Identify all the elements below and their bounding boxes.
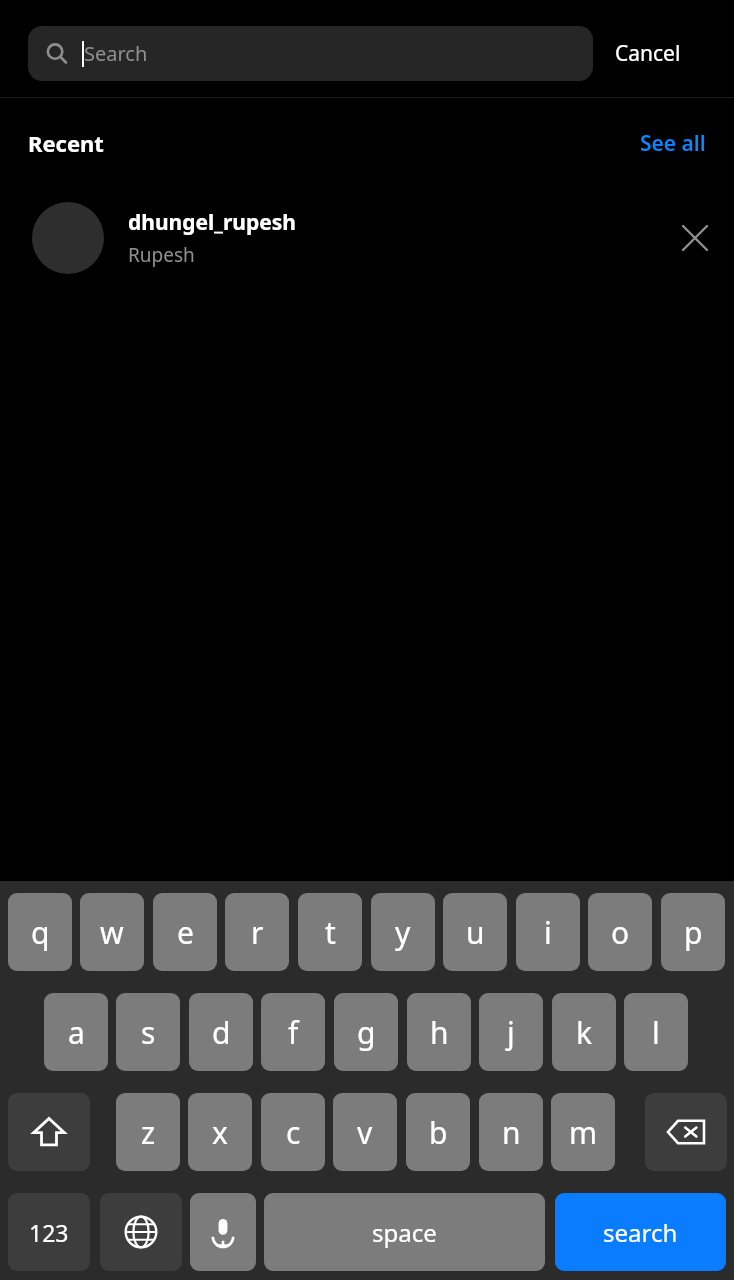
button[interactable]: f bbox=[261, 993, 325, 1071]
button[interactable]: Backspace bbox=[645, 1093, 727, 1171]
button[interactable]: y bbox=[371, 893, 435, 971]
staticText: i bbox=[544, 912, 552, 953]
staticText: q bbox=[31, 912, 50, 953]
button[interactable]: v bbox=[333, 1093, 397, 1171]
button[interactable]: a bbox=[44, 993, 108, 1071]
staticText: Rupesh bbox=[128, 242, 195, 268]
staticText: c bbox=[286, 1112, 301, 1153]
staticText: z bbox=[141, 1112, 156, 1153]
staticText: search bbox=[603, 1216, 678, 1249]
staticText: r bbox=[251, 912, 264, 953]
button[interactable]: dhungel_rupesh bbox=[0, 190, 734, 286]
button[interactable]: Numbers bbox=[8, 1193, 90, 1271]
staticText: u bbox=[466, 912, 485, 953]
staticText: Search bbox=[84, 40, 148, 67]
button[interactable]: g bbox=[334, 993, 398, 1071]
button[interactable]: i bbox=[516, 893, 580, 971]
staticText: b bbox=[429, 1112, 448, 1153]
button[interactable]: Shift bbox=[8, 1093, 90, 1171]
button[interactable]: Change keyboard bbox=[100, 1193, 182, 1271]
staticText: y bbox=[395, 912, 411, 953]
button[interactable]: q bbox=[8, 893, 72, 971]
button[interactable]: j bbox=[479, 993, 543, 1071]
staticText: space bbox=[372, 1216, 437, 1249]
staticText: x bbox=[212, 1112, 228, 1153]
staticText: dhungel_rupesh bbox=[128, 208, 296, 237]
button[interactable]: k bbox=[552, 993, 616, 1071]
button[interactable]: h bbox=[407, 993, 471, 1071]
button[interactable]: Search bbox=[28, 26, 593, 81]
staticText: g bbox=[357, 1012, 376, 1053]
staticText: v bbox=[357, 1112, 373, 1153]
button[interactable]: d bbox=[189, 993, 253, 1071]
staticText: See all bbox=[640, 129, 706, 158]
button[interactable]: Remove recent search bbox=[664, 207, 726, 269]
button[interactable]: w bbox=[80, 893, 144, 971]
button[interactable]: c bbox=[261, 1093, 325, 1171]
staticText: m bbox=[569, 1112, 598, 1153]
staticText: w bbox=[100, 912, 124, 953]
button[interactable]: Cancel bbox=[615, 26, 681, 81]
staticText: e bbox=[177, 912, 194, 953]
staticText: j bbox=[507, 1012, 515, 1053]
button[interactable]: r bbox=[225, 893, 289, 971]
staticText: o bbox=[611, 912, 630, 953]
button[interactable]: search bbox=[555, 1193, 726, 1271]
staticText: d bbox=[212, 1012, 231, 1053]
button[interactable]: z bbox=[116, 1093, 180, 1171]
staticText: l bbox=[652, 1012, 660, 1053]
button[interactable]: s bbox=[116, 993, 180, 1071]
staticText: h bbox=[430, 1012, 449, 1053]
button[interactable]: x bbox=[188, 1093, 252, 1171]
button[interactable]: p bbox=[661, 893, 725, 971]
staticText: 123 bbox=[29, 1217, 69, 1248]
staticText: t bbox=[325, 912, 336, 953]
staticText: k bbox=[576, 1012, 593, 1053]
button[interactable]: b bbox=[406, 1093, 470, 1171]
staticText: s bbox=[141, 1012, 156, 1053]
staticText: Recent bbox=[28, 128, 104, 158]
button[interactable]: o bbox=[588, 893, 652, 971]
button[interactable]: n bbox=[479, 1093, 543, 1171]
staticText: f bbox=[288, 1012, 299, 1053]
button[interactable]: l bbox=[624, 993, 688, 1071]
button[interactable]: e bbox=[153, 893, 217, 971]
staticText: n bbox=[502, 1112, 521, 1153]
button[interactable]: t bbox=[298, 893, 362, 971]
staticText: Cancel bbox=[615, 39, 681, 68]
staticText: a bbox=[68, 1012, 85, 1053]
button[interactable]: See all bbox=[640, 129, 706, 158]
button[interactable]: u bbox=[443, 893, 507, 971]
staticText: p bbox=[684, 912, 703, 953]
button[interactable]: Voice input bbox=[190, 1193, 256, 1271]
button[interactable]: m bbox=[551, 1093, 615, 1171]
button[interactable]: space bbox=[264, 1193, 545, 1271]
